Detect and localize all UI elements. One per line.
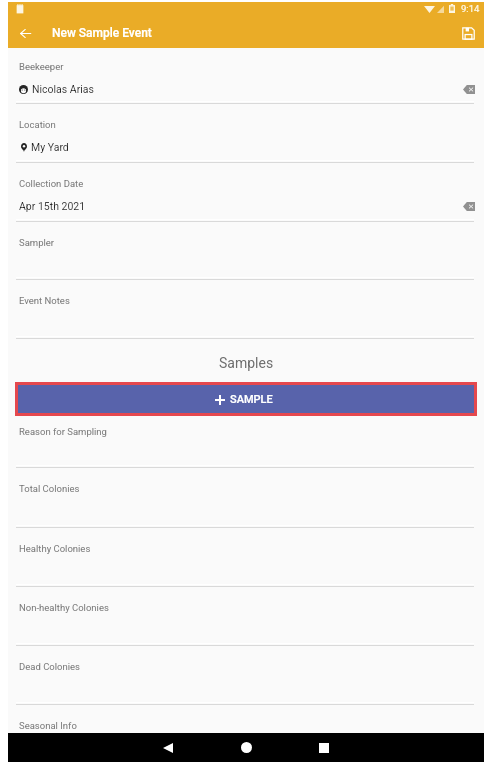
staticText: Seasonal Info [19,720,77,731]
button[interactable]: Navigate up [11,19,39,47]
button[interactable]: Save [454,19,482,47]
staticText: Collection Date [19,178,84,189]
staticText: SAMPLE [230,393,273,406]
button[interactable]: Clear text [458,80,480,98]
button[interactable]: Clear text [458,197,480,215]
button[interactable]: Healthy Colonies [8,527,484,587]
staticText: Event Notes [19,295,70,306]
staticText: My Yard [31,141,69,153]
button[interactable]: Home [207,733,285,762]
button[interactable]: SAMPLE [18,385,474,413]
staticText: Sampler [19,237,55,248]
staticText: Location [19,119,56,130]
button[interactable]: Total Colonies [8,467,484,528]
button[interactable]: Sampler [8,221,484,280]
button[interactable]: Collection Date [8,162,484,222]
staticText: New Sample Event [52,26,152,40]
button[interactable]: Back [129,733,207,762]
staticText: Reason for Sampling [19,426,107,437]
staticText: Samples [219,355,274,371]
button[interactable]: Location [8,103,484,163]
staticText: Apr 15th 2021 [19,200,86,212]
button[interactable]: Non-healthy Colonies [8,586,484,646]
staticText: Healthy Colonies [19,543,91,554]
button[interactable]: Reason for Sampling [8,416,484,468]
staticText: 9:14 [461,3,480,14]
button[interactable]: Seasonal Info [8,704,484,762]
staticText: Dead Colonies [19,661,80,672]
button[interactable]: Event Notes [8,279,484,339]
staticText: Total Colonies [19,483,80,494]
button[interactable]: Recent apps [285,733,363,762]
staticText: Nicolas Arias [32,83,94,95]
button[interactable]: Beekeeper [8,48,484,104]
button[interactable]: Dead Colonies [8,645,484,705]
staticText: Non-healthy Colonies [19,602,109,613]
staticText: Beekeeper [19,61,64,72]
